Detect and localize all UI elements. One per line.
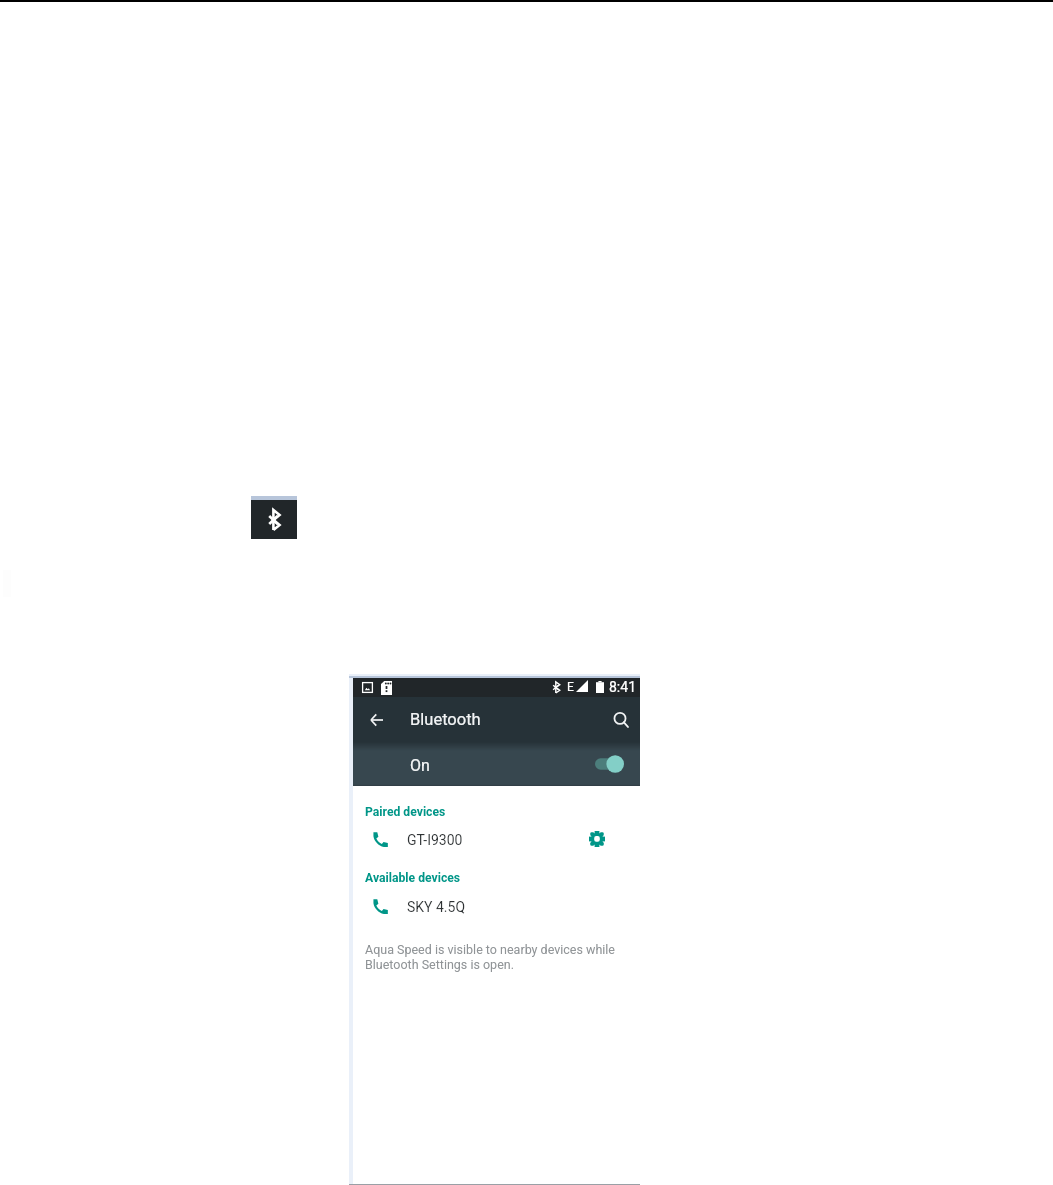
button[interactable]: SKY 4.5Q [353, 895, 640, 919]
button[interactable]: GT-I9300 [353, 828, 640, 852]
staticText: Bluetooth [410, 710, 481, 729]
staticText: On [410, 756, 430, 775]
button[interactable]: Device settings [584, 827, 610, 851]
button[interactable]: Navigate up [361, 705, 391, 735]
staticText: Aqua Speed is visible to nearby devices … [365, 942, 621, 972]
staticText: 8:41 [609, 679, 636, 695]
staticText: GT-I9300 [407, 832, 463, 848]
staticText: E [567, 680, 574, 694]
button[interactable]: Bluetooth on [595, 742, 624, 786]
staticText: SKY 4.5Q [407, 899, 466, 915]
staticText: Paired devices [365, 805, 446, 819]
button[interactable]: Search [606, 705, 636, 735]
button[interactable]: Bluetooth [251, 496, 297, 539]
button[interactable]: On [353, 742, 640, 786]
staticText: Available devices [365, 871, 461, 885]
